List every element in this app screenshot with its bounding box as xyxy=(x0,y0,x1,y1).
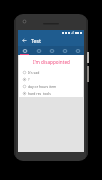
button[interactable]: Tab 1 xyxy=(18,46,32,55)
staticText: I'm disappointed xyxy=(33,59,70,65)
button[interactable]: Tab 5 xyxy=(71,46,84,55)
staticText: It's sad xyxy=(28,70,40,75)
staticText: ? xyxy=(28,77,30,82)
button[interactable]: day or hours item xyxy=(23,84,79,89)
button[interactable]: Tab 2 xyxy=(32,46,45,55)
button[interactable]: Navigate up xyxy=(21,37,28,44)
button[interactable]: Tab 4 xyxy=(58,46,71,55)
button[interactable]: Tab 3 xyxy=(45,46,58,55)
button[interactable]: hard res tools xyxy=(23,91,79,96)
button[interactable]: ? xyxy=(23,77,79,82)
staticText: Test xyxy=(31,37,42,44)
button[interactable]: It's sad xyxy=(23,70,79,75)
staticText: hard res tools xyxy=(28,91,51,96)
staticText: day or hours item xyxy=(28,84,57,89)
